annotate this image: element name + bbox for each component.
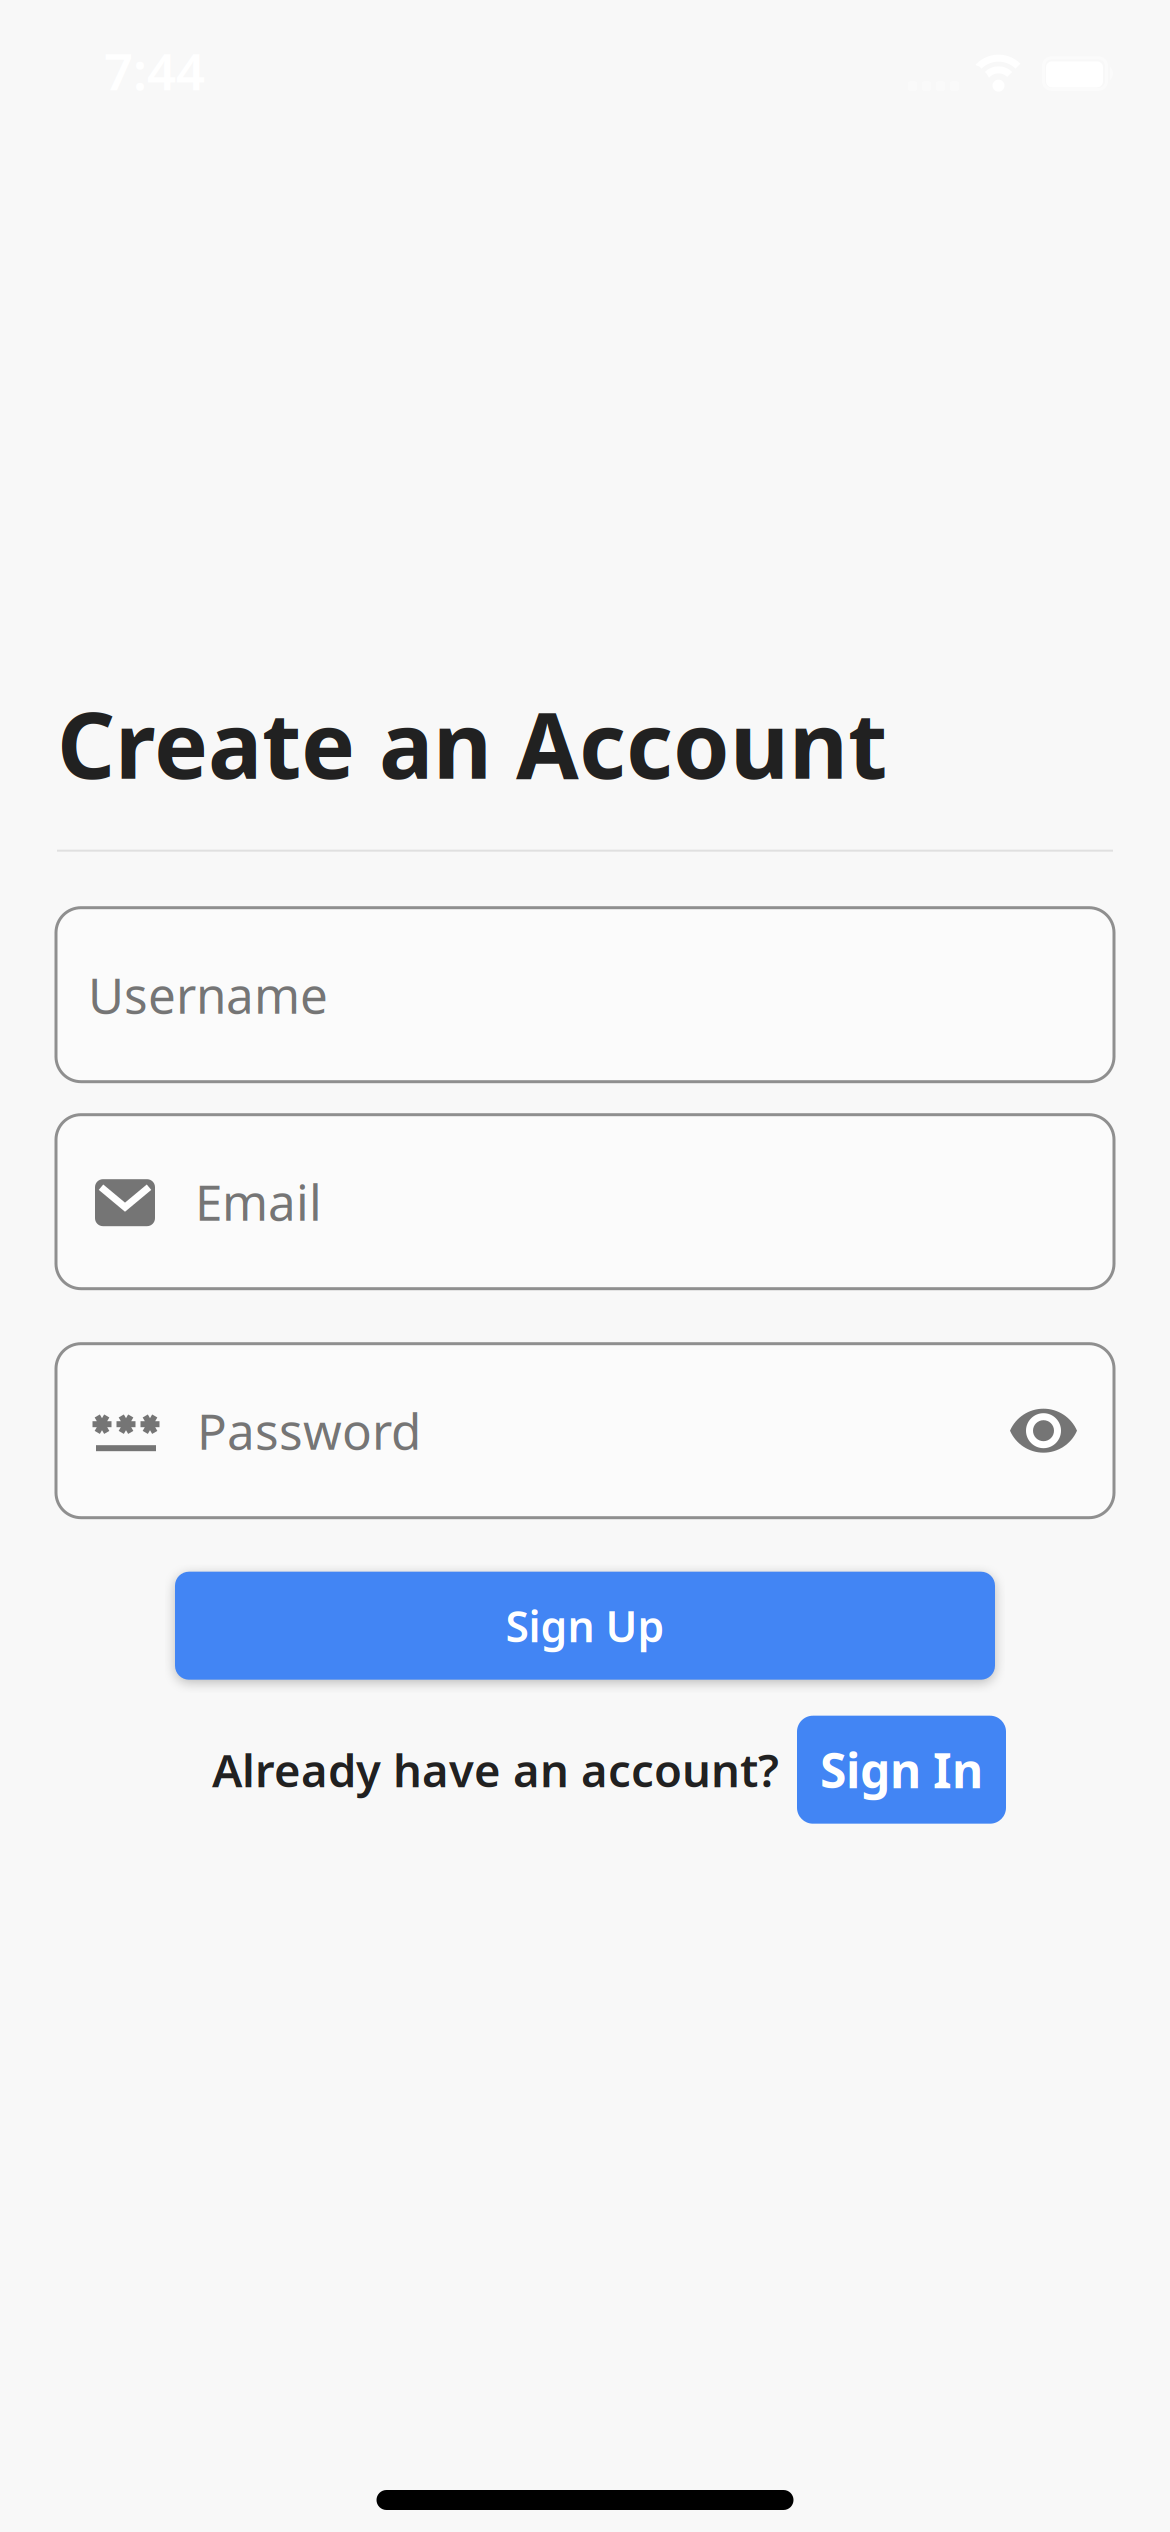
- button[interactable]: Email: [56, 1115, 1114, 1289]
- staticText: Sign In: [820, 1738, 983, 1801]
- staticText: Already have an account?: [212, 1740, 779, 1800]
- staticText: Create an Account: [57, 683, 887, 804]
- button[interactable]: Password: [56, 1344, 1114, 1518]
- button[interactable]: Show password: [1010, 1409, 1077, 1453]
- staticText: Password: [197, 1398, 421, 1463]
- button[interactable]: Sign Up: [175, 1572, 995, 1680]
- staticText: Username: [88, 962, 328, 1027]
- staticText: Sign Up: [505, 1597, 664, 1654]
- button[interactable]: Sign In: [797, 1716, 1006, 1824]
- button[interactable]: Username: [56, 908, 1114, 1082]
- staticText: Email: [195, 1169, 322, 1234]
